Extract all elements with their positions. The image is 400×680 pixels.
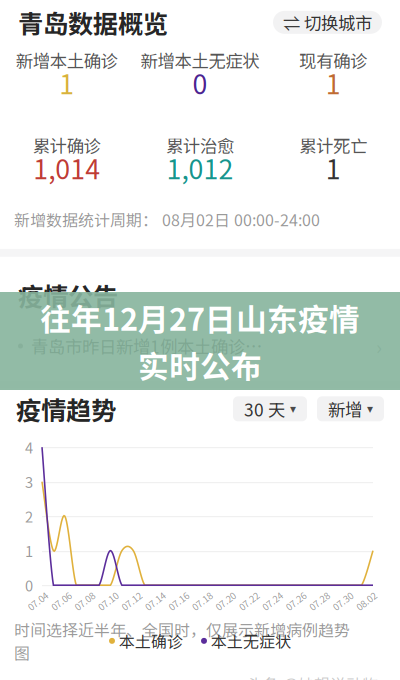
staticText: 累计死亡 xyxy=(299,133,367,158)
staticText: 07.28 xyxy=(308,594,331,608)
staticText: ▾ xyxy=(367,402,373,416)
staticText: 1,014 xyxy=(33,148,100,187)
staticText: 青岛数据概览 xyxy=(18,4,168,41)
staticText: 头条 @妙想说动物 xyxy=(247,672,378,680)
staticText: 07.26 xyxy=(284,594,307,608)
staticText: 1 xyxy=(25,540,33,561)
staticText: 2 xyxy=(25,506,33,527)
staticText: 新增本土无症状 xyxy=(140,48,259,73)
staticText: 07.22 xyxy=(237,594,260,608)
staticText: 本土无症状 xyxy=(211,629,291,652)
staticText: 08.02 xyxy=(355,594,378,608)
staticText: 07.04 xyxy=(26,594,49,608)
staticText: 07.06 xyxy=(50,594,73,608)
staticText: 实时公布 xyxy=(138,342,262,387)
staticText: 30 天 xyxy=(244,396,285,421)
staticText: ⇌ 切换城市 xyxy=(283,10,372,35)
staticText: 疫情趋势 xyxy=(16,390,116,427)
staticText: 3 xyxy=(25,471,33,492)
staticText: 累计治愈 xyxy=(166,133,234,158)
staticText: 青岛市昨日新增1例本土确诊… xyxy=(31,333,262,359)
staticText: 新增 xyxy=(328,396,362,421)
staticText: 07.08 xyxy=(73,594,96,608)
staticText: 07.10 xyxy=(97,594,120,608)
staticText: 本土确诊 xyxy=(119,629,183,652)
staticText: ▾ xyxy=(290,402,296,416)
staticText: 07.24 xyxy=(261,594,284,608)
staticText: 1 xyxy=(326,148,341,187)
staticText: 1 xyxy=(59,63,74,102)
staticText: 往年12月27日山东疫情 xyxy=(40,295,360,339)
staticText: 07.18 xyxy=(190,594,213,608)
staticText: 1,012 xyxy=(166,148,233,187)
button[interactable]: 新增 xyxy=(317,396,384,421)
staticText: 07.16 xyxy=(167,594,190,608)
staticText: 新增本土确诊 xyxy=(16,48,118,73)
staticText: 4 xyxy=(25,437,33,458)
staticText: 1 xyxy=(326,63,341,102)
staticText: 0 xyxy=(192,63,207,102)
staticText: 累计确诊 xyxy=(33,133,101,158)
staticText: 0 xyxy=(25,575,33,596)
button[interactable]: 30 天 xyxy=(233,396,307,421)
staticText: 07.20 xyxy=(214,594,237,608)
staticText: 现有确诊 xyxy=(299,48,367,73)
staticText: 07.14 xyxy=(144,594,167,608)
staticText: 07.30 xyxy=(331,594,354,608)
button[interactable]: 青岛市昨日新增1例本土确诊… xyxy=(0,313,400,380)
staticText: 疫情公告 xyxy=(18,277,118,314)
staticText: 07.12 xyxy=(120,594,143,608)
staticText: 时间选择近半年、全国时，仅展示新增病例趋势图 xyxy=(14,618,350,664)
staticText: 新增数据统计周期： 08月02日 00:00-24:00 xyxy=(14,208,320,231)
button[interactable]: ⇌ 切换城市 xyxy=(273,11,382,34)
